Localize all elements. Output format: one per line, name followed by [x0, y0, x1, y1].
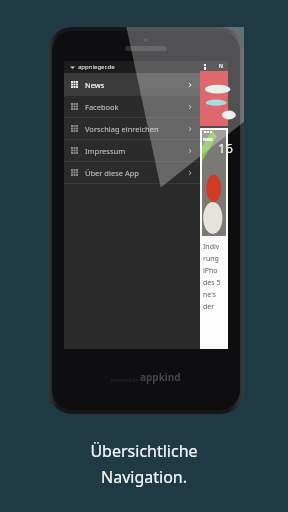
staticText: News — [85, 80, 105, 90]
staticText: iPho — [203, 266, 218, 276]
staticText: Impressum — [85, 146, 126, 156]
button[interactable]: appnieger.de — [64, 61, 200, 73]
button[interactable]: Impressum — [64, 140, 200, 161]
staticText: Indiv — [203, 242, 220, 252]
staticText: Navigation. — [101, 466, 187, 488]
staticText: ne's — [203, 290, 216, 300]
staticText: appkind — [140, 370, 181, 384]
staticText: rung — [203, 254, 219, 264]
staticText: 16 — [218, 139, 233, 157]
staticText: N — [219, 63, 223, 70]
staticText: Vorschlag einreichen — [85, 124, 159, 134]
button[interactable]: Vorschlag einreichen — [64, 118, 200, 139]
staticText: der — [203, 302, 215, 312]
staticText: neu — [203, 136, 213, 143]
button[interactable]: News — [64, 74, 200, 95]
staticText: Facebook — [85, 102, 119, 112]
button[interactable]: Facebook — [64, 96, 200, 117]
button[interactable]: Über diese App — [64, 162, 200, 183]
staticText: des 5 — [203, 278, 221, 288]
staticText: Übersichtliche — [90, 440, 198, 462]
staticText: Über diese App — [85, 168, 139, 178]
staticText: appnieger.de — [78, 63, 115, 71]
staticText: powered by — [111, 377, 140, 384]
